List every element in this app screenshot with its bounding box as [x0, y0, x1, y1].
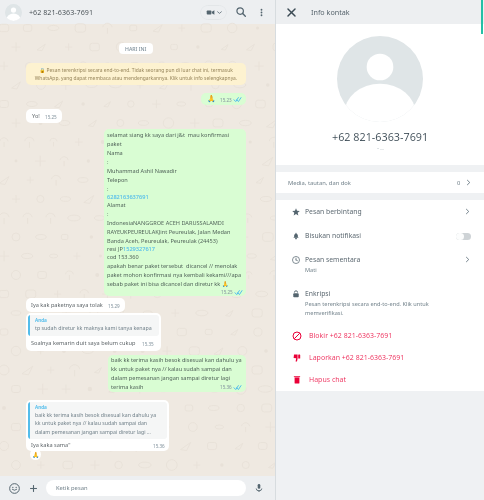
button[interactable]: Menu [256, 7, 267, 18]
staticText: 15.36 [220, 384, 232, 390]
button[interactable]: Pesan berbintang [276, 200, 484, 224]
button[interactable]: Media, tautan, dan dok [276, 172, 484, 193]
staticText: Blokir +62 821-6363-7691 [309, 331, 393, 341]
staticText: 15.23 [220, 97, 232, 103]
staticText: 15.25 [45, 114, 57, 120]
staticText: cod 153.360 apakah benar paket tersebut … [107, 253, 242, 288]
button[interactable]: Blokir +62 821-6363-7691 [276, 325, 484, 347]
staticText: baik kk terima kasih besok disesual kan … [35, 411, 157, 435]
button[interactable]: Attach [29, 484, 38, 493]
staticText: tp sudah diretur kk maknya kami tanya ke… [35, 324, 152, 331]
staticText: 1529327617 [123, 245, 155, 253]
staticText: 15.36 [153, 443, 165, 449]
staticText: Iya kaka sama" [31, 441, 71, 449]
button[interactable]: Enkripsi [276, 282, 484, 325]
staticText: Enkripsi [305, 289, 331, 298]
staticText: Iya kak paketnya saya tolak [31, 301, 103, 309]
staticText: 6282163637691 [107, 193, 149, 201]
staticText: 15.35 [142, 341, 154, 347]
staticText: 🙏 [207, 95, 216, 103]
button[interactable]: Pesan sementara [276, 248, 484, 282]
staticText: 15.25 [221, 289, 233, 295]
staticText: Media, tautan, dan dok [288, 179, 351, 187]
staticText: selamat siang kk saya dari j&t mau konfi… [107, 131, 230, 193]
staticText: 🙏 [32, 451, 40, 458]
staticText: Hapus chat [309, 375, 347, 385]
staticText: Anda [35, 317, 47, 324]
staticText: Pesan terenkripsi secara end-to-end. Kli… [305, 300, 429, 317]
button[interactable]: Bisukan notifikasi [276, 224, 484, 248]
button[interactable]: Hapus chat [276, 369, 484, 391]
button[interactable]: Voice message [254, 483, 264, 493]
staticText: HARI INI [125, 45, 147, 52]
staticText: +62 821-6363-7691 [29, 7, 94, 17]
staticText: +62 821-6363-7691 [332, 129, 429, 144]
staticText: baik kk terima kasih besok disesual kan … [111, 356, 242, 391]
staticText: 🔒 Pesan terenkripsi secara end-to-end. T… [34, 67, 238, 81]
button[interactable]: Video call [200, 5, 227, 20]
staticText: ~ .... [377, 146, 384, 151]
staticText: 15.29 [108, 303, 120, 309]
staticText: Pesan berbintang [305, 207, 362, 216]
staticText: Bisukan notifikasi [305, 231, 362, 240]
button[interactable]: Emoji [9, 483, 20, 494]
staticText: Yo! [32, 112, 40, 120]
staticText: Alamat : IndonesiaNANGGROE ACEH DARUSSAL… [107, 201, 231, 245]
button[interactable]: Search [235, 6, 247, 18]
staticText: Laporkan +62 821-6363-7691 [309, 353, 405, 363]
staticText: Pesan sementara [305, 255, 361, 264]
button[interactable]: Close [286, 7, 297, 18]
button[interactable]: Laporkan +62 821-6363-7691 [276, 347, 484, 369]
staticText: resi JP [107, 245, 123, 253]
staticText: Anda [35, 404, 47, 411]
button[interactable]: Ketik pesan [46, 480, 246, 496]
staticText: Ketik pesan [56, 484, 88, 492]
staticText: Info kontak [311, 7, 350, 17]
staticText: Mati [305, 266, 317, 274]
staticText: 0 [457, 179, 461, 187]
staticText: Soalnya kemarin duit saya belum cukup [31, 339, 136, 347]
